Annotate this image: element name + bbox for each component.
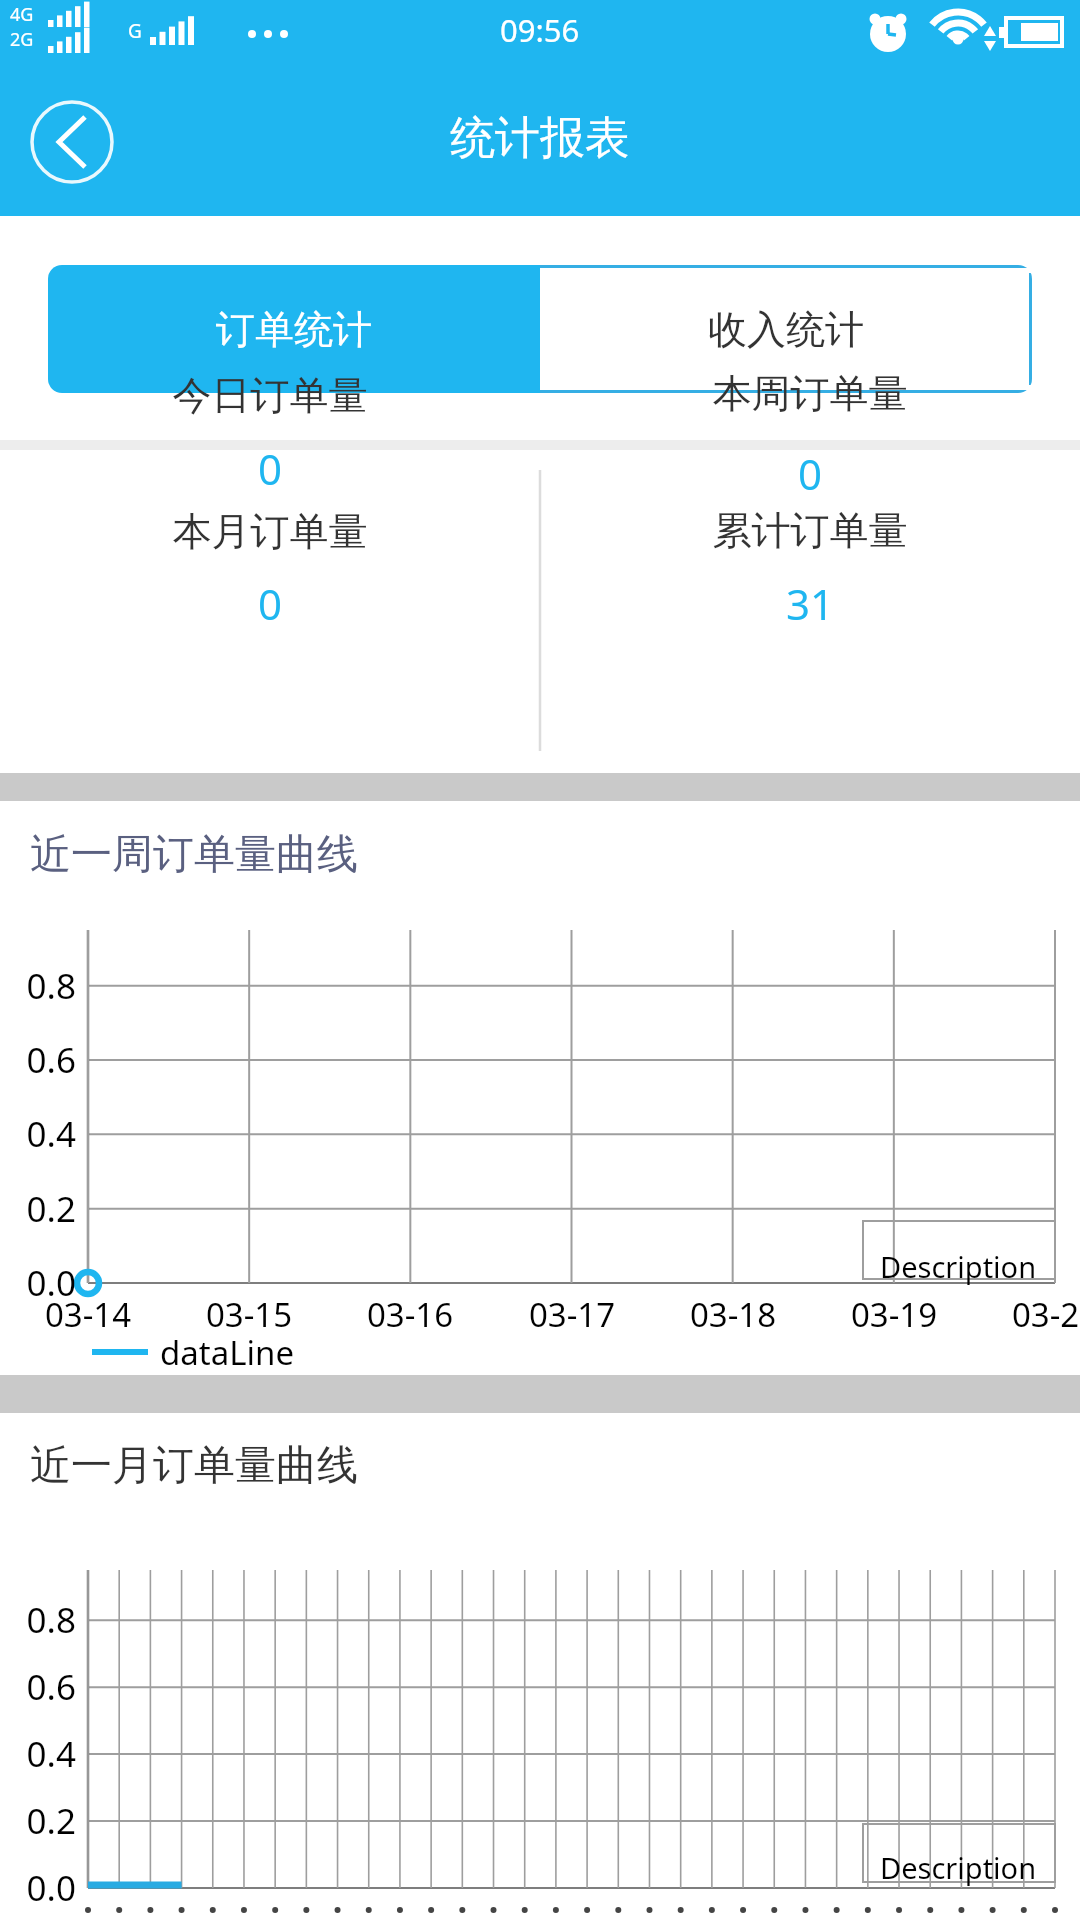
staticText: 03-18 [673,1292,793,1337]
staticText: 0.2 [0,1185,76,1233]
button[interactable]: 收入统计 [540,265,1032,393]
staticText: Description [880,1848,1037,1887]
staticText: 0.6 [0,1036,76,1084]
staticText: 0 [610,445,1010,502]
staticText: Description [880,1247,1037,1286]
staticText: 0 [70,575,470,632]
staticText: 0 [70,440,470,497]
button[interactable]: Back [30,100,114,184]
staticText: 2G [10,27,34,52]
staticText: G [128,18,142,44]
staticText: 订单统计 [216,305,372,354]
staticText: 累计订单量 [610,506,1010,555]
staticText: 近一月订单量曲线 [30,1440,358,1492]
staticText: 0.6 [0,1663,76,1711]
staticText: 本周订单量 [610,369,1010,418]
staticText: 0.8 [0,962,76,1010]
staticText: 03-19 [834,1292,954,1337]
staticText: 03-17 [512,1292,632,1337]
staticText: dataLine [160,1330,295,1375]
staticText: 03-15 [189,1292,309,1337]
staticText: 0.8 [0,1596,76,1644]
staticText: 09:56 [500,9,580,51]
staticText: 03-20 [995,1292,1080,1337]
staticText: 收入统计 [708,305,864,354]
staticText: 0.2 [0,1797,76,1845]
button[interactable]: 订单统计 [48,265,540,393]
staticText: 0.4 [0,1730,76,1778]
staticText: 03-14 [28,1292,148,1337]
staticText: 03-16 [350,1292,470,1337]
staticText: 0.0 [0,1864,76,1912]
staticText: 近一周订单量曲线 [30,829,358,881]
staticText: 31 [610,575,1010,632]
staticText: 0.4 [0,1110,76,1158]
staticText: 本月订单量 [70,507,470,556]
staticText: 4G [10,2,34,27]
staticText: 今日订单量 [70,371,470,420]
staticText: 统计报表 [450,110,630,167]
staticText: 0.0 [0,1259,76,1307]
